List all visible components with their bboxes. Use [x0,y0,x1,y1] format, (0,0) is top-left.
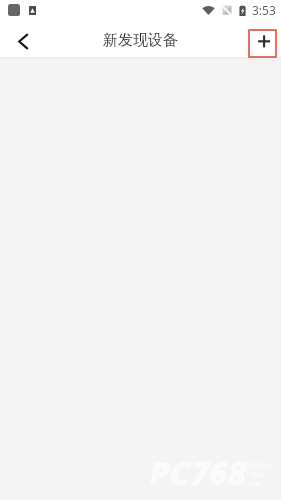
staticText: PC768 [145,451,243,495]
button[interactable]: Back [3,23,43,60]
staticText: 新发现设备 [103,31,178,50]
staticText: 3:53 [252,2,276,18]
button[interactable]: Add device [249,30,276,57]
